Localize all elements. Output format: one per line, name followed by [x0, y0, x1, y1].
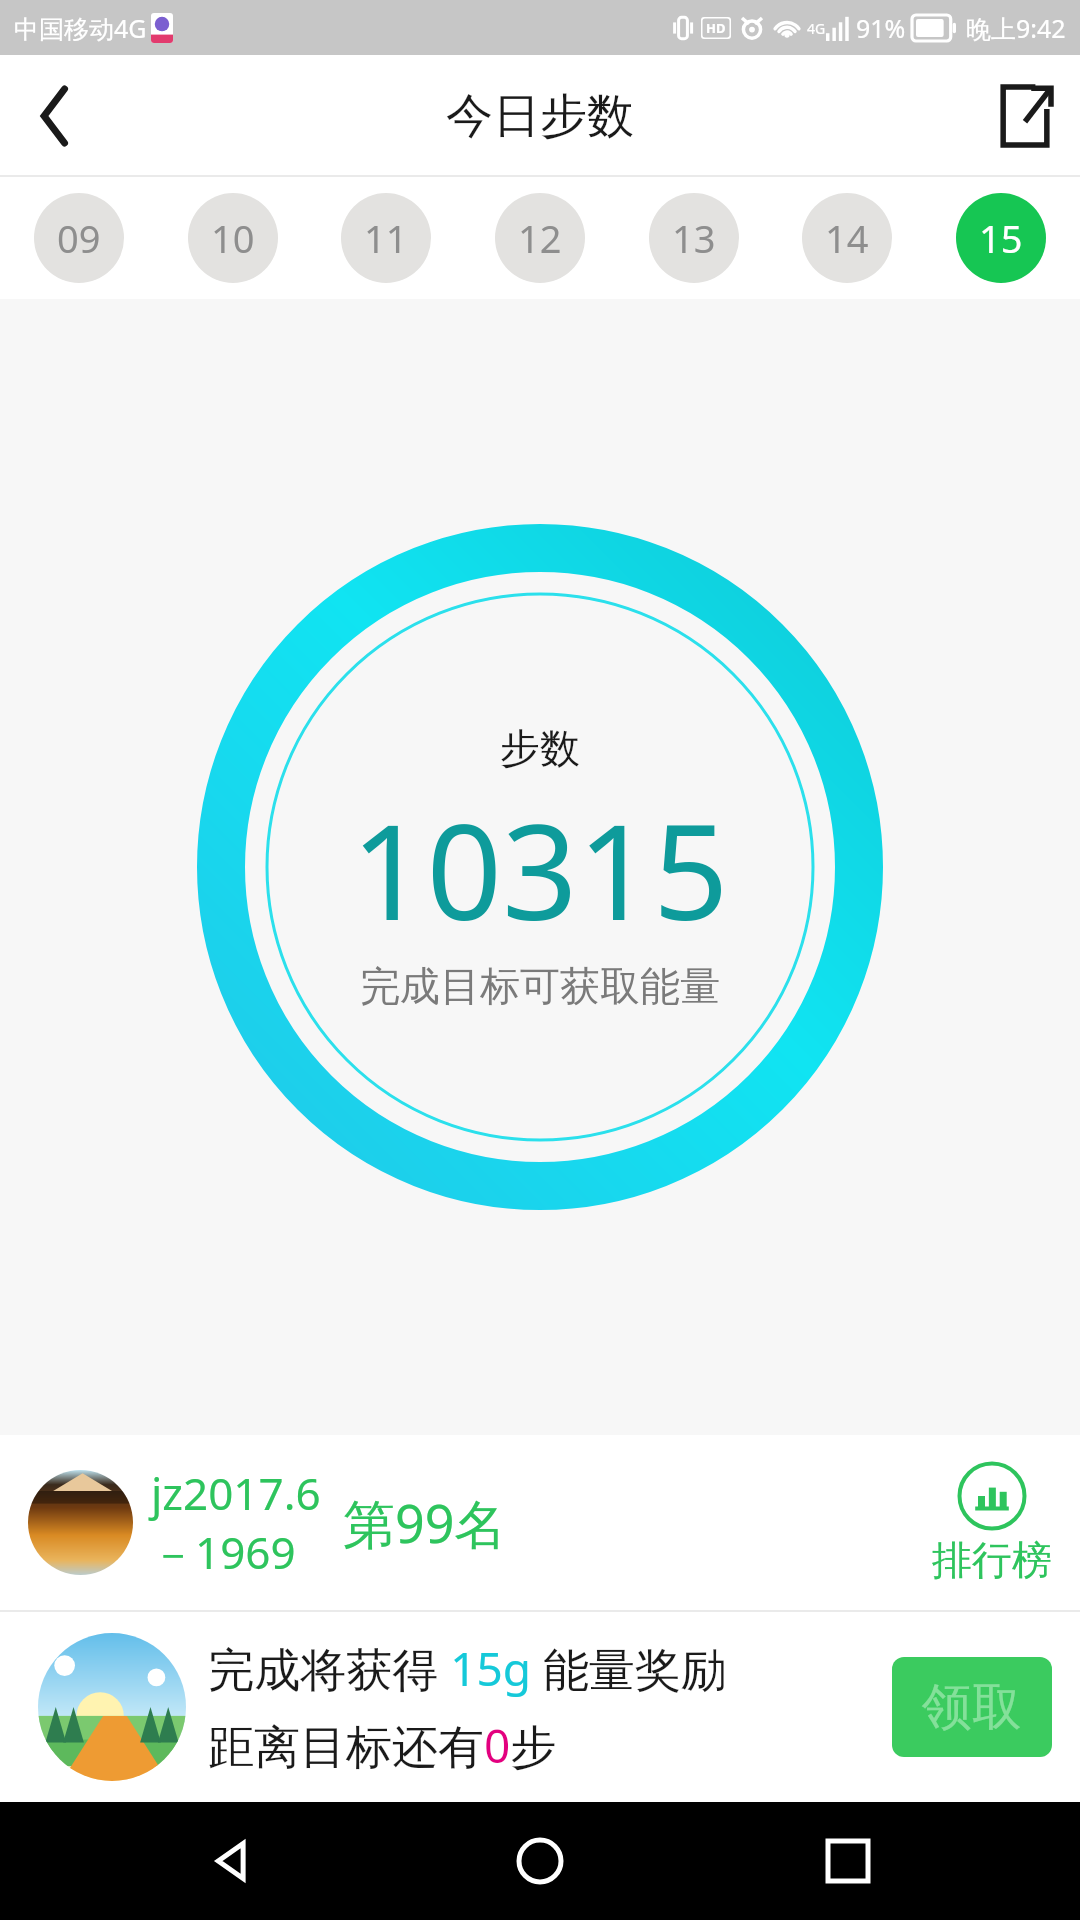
staticText: 完成将获得 15g 能量奖励 [208, 1637, 727, 1700]
button[interactable]: 09 [34, 193, 124, 283]
staticText: 排行榜 [932, 1535, 1052, 1585]
button[interactable]: 排行榜 [932, 1461, 1052, 1585]
staticText: 10315 [351, 779, 729, 959]
button[interactable]: jz2017.6 －1969 [0, 1435, 1080, 1610]
button[interactable]: 13 [649, 193, 739, 283]
button[interactable]: Home [465, 1802, 615, 1920]
staticText: 距离目标还有0步 [208, 1714, 557, 1777]
button[interactable]: Recents [773, 1802, 923, 1920]
staticText: 晚上9:42 [966, 11, 1066, 45]
button[interactable]: 12 [495, 193, 585, 283]
staticText: 13 [672, 212, 716, 264]
button[interactable]: Back [158, 1802, 308, 1920]
staticText: 11 [364, 212, 408, 264]
staticText: 15 [979, 212, 1023, 264]
staticText: HD [706, 19, 726, 37]
button[interactable]: 领取 [892, 1657, 1052, 1757]
staticText: 完成目标可获取能量 [360, 961, 720, 1011]
staticText: 91% [856, 11, 906, 45]
staticText: 中国移动4G [14, 11, 147, 45]
staticText: 4G [807, 19, 826, 38]
staticText: 12 [518, 212, 562, 264]
staticText: 10 [211, 212, 255, 264]
staticText: 第99名 [343, 1487, 507, 1558]
button[interactable]: 14 [802, 193, 892, 283]
staticText: 领取 [922, 1676, 1022, 1739]
staticText: 09 [57, 212, 101, 264]
staticText: jz2017.6 －1969 [151, 1463, 321, 1582]
button[interactable]: 15 [956, 193, 1046, 283]
button[interactable]: Back [0, 61, 110, 171]
button[interactable]: 11 [341, 193, 431, 283]
staticText: 今日步数 [446, 87, 634, 146]
staticText: 14 [825, 212, 869, 264]
staticText: 步数 [500, 723, 580, 773]
button[interactable]: Share [970, 61, 1080, 171]
button[interactable]: 10 [188, 193, 278, 283]
